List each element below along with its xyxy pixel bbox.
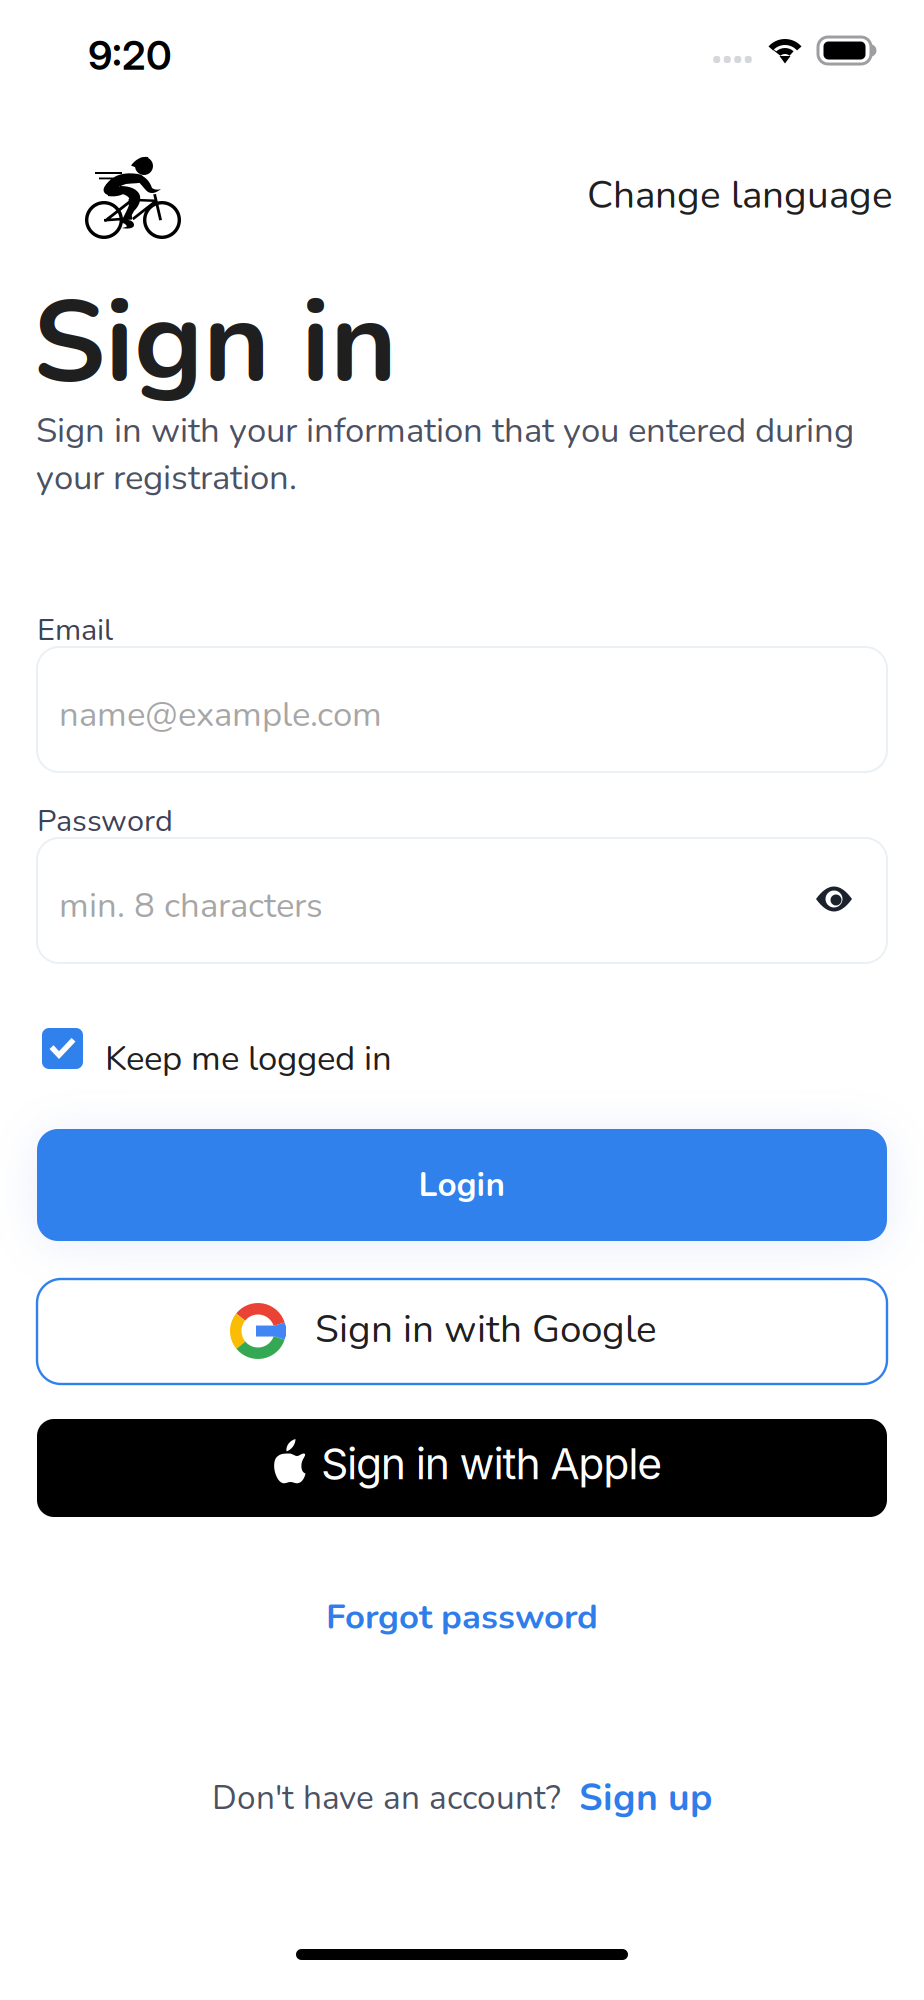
- staticText: Email: [37, 609, 113, 651]
- button[interactable]: Login: [37, 1129, 887, 1241]
- button[interactable]: Sign in with Apple: [37, 1419, 887, 1517]
- button[interactable]: Sign in with Google: [37, 1279, 887, 1384]
- staticText: Don't have an account?: [212, 1775, 561, 1821]
- staticText: Sign in with Google: [315, 1303, 657, 1356]
- button[interactable]: Change language: [573, 167, 893, 223]
- button[interactable]: Forgot password: [37, 1589, 887, 1645]
- staticText: Sign up: [579, 1772, 712, 1823]
- staticText: name@example.com: [59, 691, 382, 738]
- staticText: 9:20: [88, 31, 172, 79]
- staticText: Sign in with your information that you e…: [36, 407, 854, 502]
- staticText: Sign in with Apple: [321, 1438, 662, 1490]
- button[interactable]: Sign up: [579, 1772, 712, 1823]
- staticText: Password: [37, 800, 173, 842]
- staticText: min. 8 characters: [59, 882, 323, 929]
- staticText: Keep me logged in: [105, 1035, 392, 1082]
- staticText: Login: [418, 1162, 505, 1208]
- staticText: Sign in: [33, 264, 397, 420]
- staticText: Change language: [587, 169, 893, 221]
- button[interactable]: Show password: [816, 883, 852, 915]
- button[interactable]: Keep me logged in: [42, 1028, 462, 1069]
- staticText: Forgot password: [326, 1593, 598, 1641]
